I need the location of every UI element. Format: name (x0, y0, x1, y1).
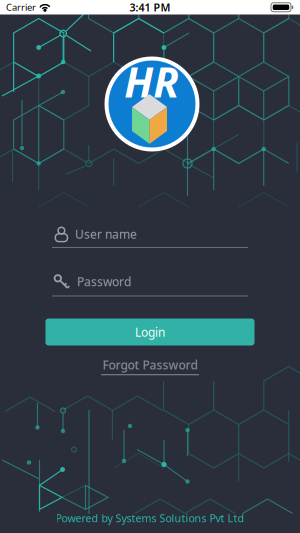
staticText: HR (124, 54, 179, 109)
button[interactable]: Login (45, 318, 254, 345)
staticText: 3:41 PM (129, 0, 170, 14)
staticText: Powered by Systems Solutions Pvt Ltd (55, 511, 244, 525)
staticText: Forgot Password (102, 357, 197, 373)
staticText: Carrier (6, 1, 36, 13)
button[interactable]: User name (52, 226, 248, 248)
staticText: Login (135, 324, 165, 340)
button[interactable]: Forgot Password (101, 357, 199, 375)
staticText: Password (77, 273, 131, 289)
staticText: User name (75, 226, 137, 242)
button[interactable]: Password (52, 273, 248, 296)
